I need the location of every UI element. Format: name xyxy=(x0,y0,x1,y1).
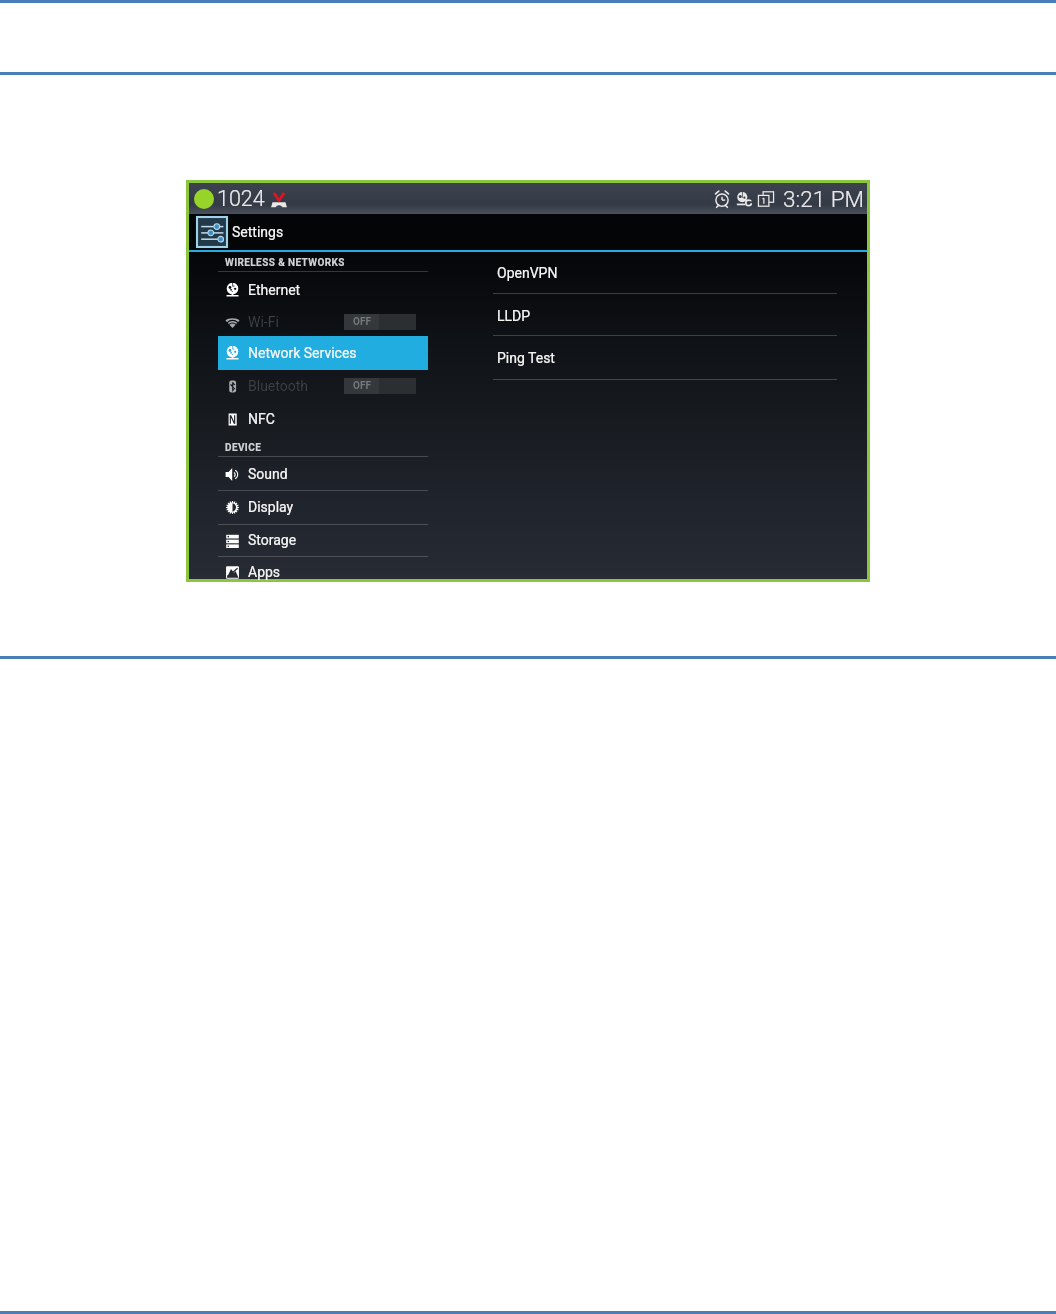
button[interactable]: LLDP xyxy=(493,296,841,336)
staticText: Wi-Fi xyxy=(248,314,279,330)
button[interactable]: Line 1024 registered xyxy=(189,186,288,211)
button[interactable]: Ping Test xyxy=(493,338,841,378)
staticText: Apps xyxy=(248,564,281,580)
staticText: OpenVPN xyxy=(497,265,558,281)
button[interactable]: Sound xyxy=(218,457,428,491)
staticText: Settings xyxy=(232,224,284,240)
button[interactable]: NFC xyxy=(218,402,428,436)
staticText: Storage xyxy=(248,532,297,548)
staticText: OFF xyxy=(353,316,371,328)
button[interactable]: OFF xyxy=(344,378,416,394)
staticText: Network Services xyxy=(248,345,357,361)
staticText: DEVICE xyxy=(225,442,262,454)
button[interactable]: Bluetooth xyxy=(218,369,428,403)
staticText: OFF xyxy=(353,380,371,392)
staticText: Sound xyxy=(248,466,288,482)
button[interactable]: Apps xyxy=(218,555,428,589)
staticText: 1024 xyxy=(217,186,265,211)
button[interactable]: Settings xyxy=(227,214,284,250)
staticText: Bluetooth xyxy=(248,378,308,394)
other: Line 1024 registered xyxy=(194,189,214,209)
other: GPRS network xyxy=(736,191,753,208)
staticText: 3:21 PM xyxy=(783,186,864,212)
staticText: NFC xyxy=(248,411,275,427)
button[interactable]: Wi-Fi xyxy=(218,305,428,339)
staticText: Ethernet xyxy=(248,282,301,298)
staticText: Display xyxy=(248,499,294,515)
button[interactable]: Network Services xyxy=(218,336,428,370)
staticText: LLDP xyxy=(497,308,531,324)
button[interactable]: Display xyxy=(218,490,428,524)
staticText: WIRELESS & NETWORKS xyxy=(225,257,345,269)
button[interactable]: Alarm set xyxy=(713,186,867,212)
button[interactable]: Storage xyxy=(218,523,428,557)
button[interactable]: Settings, navigate up xyxy=(197,217,227,247)
staticText: Ping Test xyxy=(497,350,555,366)
other: Missed call xyxy=(270,190,288,208)
other: One open window xyxy=(757,190,775,208)
other: Alarm set xyxy=(713,190,731,208)
button[interactable]: OpenVPN xyxy=(493,253,841,293)
button[interactable]: Ethernet xyxy=(218,273,428,307)
button[interactable]: OFF xyxy=(344,314,416,330)
